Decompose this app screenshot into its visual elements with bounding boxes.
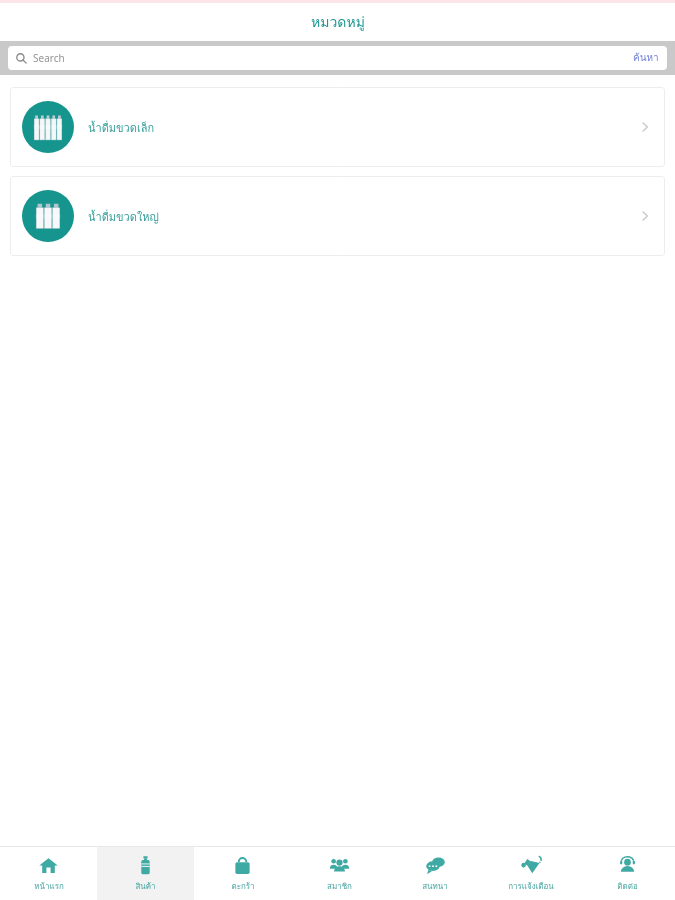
staticText: สนทนา	[422, 880, 448, 893]
button[interactable]: Search	[8, 46, 667, 70]
button[interactable]: น้ำดื่มขวดใหญ่	[10, 176, 665, 256]
button[interactable]: น้ำดื่มขวดเล็ก	[10, 87, 665, 167]
button[interactable]: Members	[291, 847, 387, 900]
staticText: หน้าแรก	[34, 880, 64, 893]
button[interactable]: Cart	[194, 847, 291, 900]
staticText: ติดต่อ	[617, 880, 638, 893]
staticText: การแจ้งเตือน	[508, 880, 554, 893]
button[interactable]: Contact	[579, 847, 675, 900]
staticText: Search	[33, 51, 65, 65]
button[interactable]: Chat	[387, 847, 483, 900]
button[interactable]: ค้นหา	[633, 50, 659, 66]
button[interactable]: Products	[97, 847, 194, 900]
staticText: หมวดหมู่	[311, 11, 365, 33]
staticText: ตะกร้า	[231, 880, 255, 893]
staticText: สมาชิก	[327, 880, 352, 893]
button[interactable]: Home	[0, 847, 97, 900]
staticText: น้ำดื่มขวดเล็ก	[88, 119, 155, 136]
staticText: ค้นหา	[633, 50, 659, 66]
staticText: สินค้า	[135, 880, 156, 893]
staticText: น้ำดื่มขวดใหญ่	[88, 208, 159, 225]
button[interactable]: Notifications	[483, 847, 579, 900]
